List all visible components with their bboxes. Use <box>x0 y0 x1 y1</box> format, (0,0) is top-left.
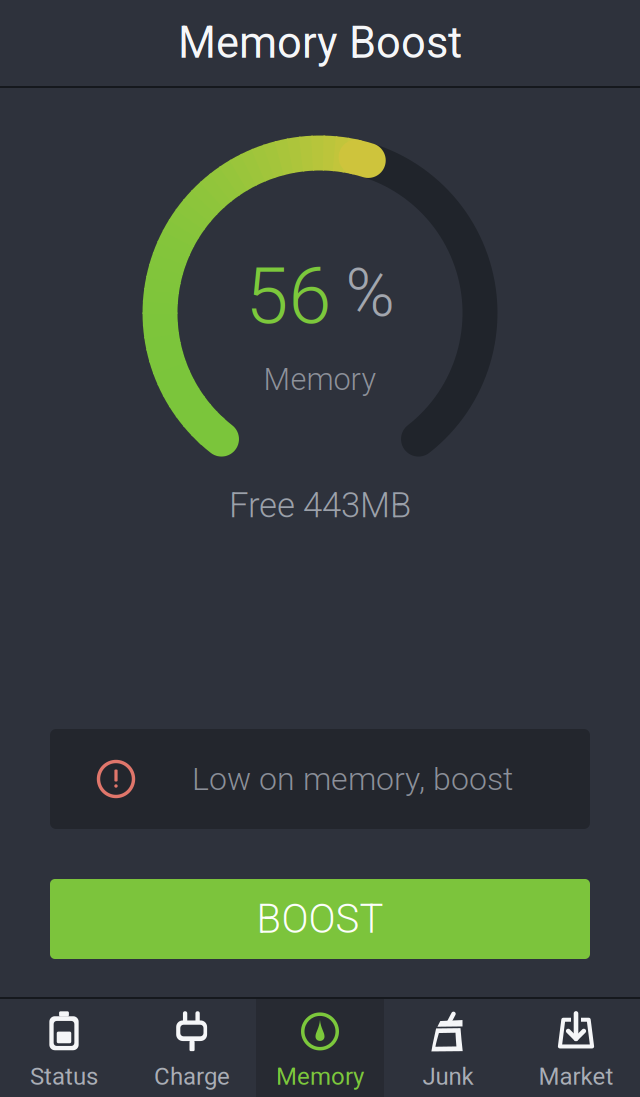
staticText: Status <box>30 1062 98 1090</box>
button[interactable]: Charge <box>128 999 256 1097</box>
staticText: % <box>345 254 394 332</box>
staticText: Low on memory, boost <box>192 760 513 798</box>
staticText: Charge <box>154 1062 230 1090</box>
staticText: 56 <box>245 251 331 342</box>
staticText: Free 443MB <box>229 485 411 526</box>
button[interactable]: Memory <box>256 999 384 1097</box>
button[interactable]: Status <box>0 999 128 1097</box>
staticText: Junk <box>422 1062 473 1090</box>
staticText: Memory <box>276 1062 364 1090</box>
button[interactable]: BOOST <box>50 879 590 959</box>
staticText: BOOST <box>256 896 383 942</box>
staticText: Memory <box>263 362 376 397</box>
staticText: Memory Boost <box>178 17 462 68</box>
staticText: Market <box>538 1062 613 1090</box>
button[interactable]: Market <box>512 999 640 1097</box>
button[interactable]: Junk <box>384 999 512 1097</box>
